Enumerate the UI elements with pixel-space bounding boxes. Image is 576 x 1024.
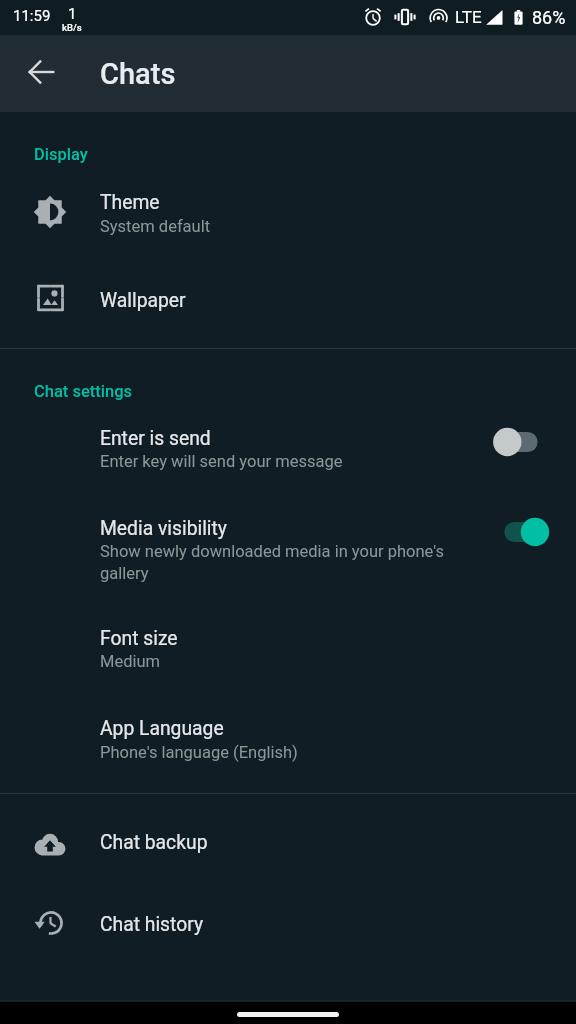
staticText: 11:59 — [13, 7, 51, 25]
button[interactable]: Chat backup — [0, 818, 576, 874]
button[interactable]: Enter is send — [0, 414, 576, 488]
button[interactable]: Enter is send — [485, 420, 555, 464]
button[interactable]: Theme — [0, 178, 576, 252]
staticText: Enter key will send your message — [100, 452, 452, 471]
button[interactable]: Media visibility — [485, 510, 555, 554]
button[interactable]: Font size — [0, 614, 576, 688]
staticText: System default — [100, 217, 452, 236]
staticText: Font size — [100, 627, 178, 650]
staticText: 1 — [68, 5, 77, 23]
staticText: Theme — [100, 191, 160, 214]
button[interactable]: Wallpaper — [0, 276, 576, 332]
staticText: App Language — [100, 717, 224, 740]
staticText: Chat backup — [100, 831, 208, 854]
button[interactable]: Media visibility — [0, 504, 576, 578]
button[interactable]: Back — [19, 50, 63, 94]
staticText: Wallpaper — [100, 289, 186, 312]
staticText: 86% — [532, 7, 566, 28]
staticText: LTE — [455, 7, 482, 27]
staticText: Chat history — [100, 913, 204, 936]
staticText: Chats — [100, 57, 176, 91]
staticText: Chat settings — [34, 382, 133, 401]
staticText: Show newly downloaded media in your phon… — [100, 542, 452, 583]
staticText: kB/s — [62, 22, 82, 33]
staticText: Display — [34, 145, 88, 164]
staticText: Medium — [100, 652, 452, 671]
staticText: Phone's language (English) — [100, 743, 452, 762]
staticText: Media visibility — [100, 517, 227, 540]
staticText: Enter is send — [100, 427, 211, 450]
button[interactable]: App Language — [0, 704, 576, 778]
button[interactable]: Chat history — [0, 900, 576, 956]
